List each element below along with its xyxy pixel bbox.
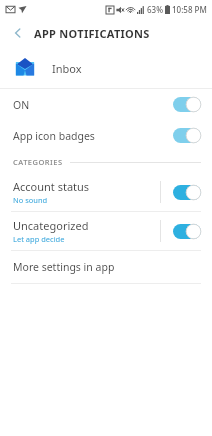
staticText: Inbox xyxy=(52,61,82,76)
staticText: Uncategorized xyxy=(13,218,89,233)
staticText: No sound xyxy=(13,195,48,205)
button[interactable]: Inbox xyxy=(0,48,212,88)
staticText: Account status xyxy=(13,179,90,194)
button[interactable]: Toggle xyxy=(173,128,201,143)
button[interactable]: Toggle xyxy=(173,224,201,239)
button[interactable]: More settings in app xyxy=(0,251,212,283)
button[interactable]: Account status xyxy=(0,173,212,211)
button[interactable]: Toggle xyxy=(173,185,201,200)
staticText: CATEGORIES xyxy=(13,157,63,167)
staticText: 10:58 PM xyxy=(172,4,207,15)
staticText: 63% xyxy=(147,4,163,15)
button[interactable]: Toggle xyxy=(173,97,201,112)
staticText: More settings in app xyxy=(13,260,115,274)
button[interactable]: Back xyxy=(8,23,28,43)
staticText: Let app decide xyxy=(13,234,65,244)
button[interactable]: Uncategorized xyxy=(0,212,212,250)
staticText: APP NOTIFICATIONS xyxy=(34,26,150,41)
staticText: App icon badges xyxy=(13,129,173,143)
button[interactable]: App icon badges xyxy=(0,120,212,151)
staticText: ON xyxy=(13,98,173,112)
button[interactable]: ON xyxy=(0,89,212,120)
